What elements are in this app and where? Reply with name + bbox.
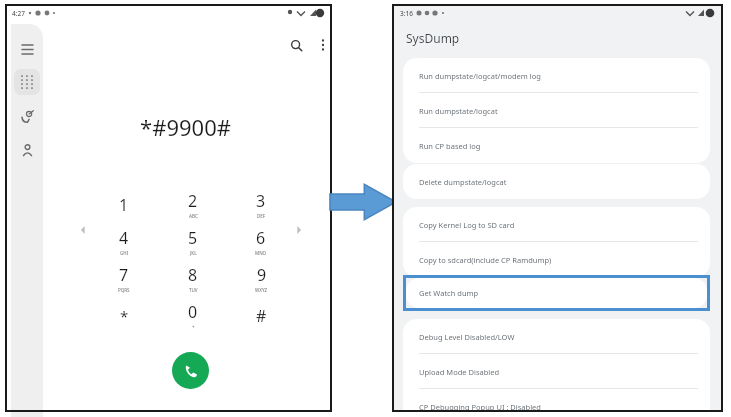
button[interactable]: Call: [172, 352, 209, 389]
staticText: Run CP based log: [419, 141, 481, 151]
staticText: 7: [119, 264, 129, 286]
button[interactable]: 9: [232, 260, 290, 297]
staticText: 1: [119, 194, 129, 216]
staticText: Copy Kernel Log to SD card: [419, 220, 515, 230]
staticText: #: [256, 305, 267, 327]
staticText: JKL: [190, 250, 197, 256]
button[interactable]: *: [95, 297, 153, 334]
staticText: Upload Mode Disabled: [419, 367, 500, 377]
button[interactable]: Copy to sdcard(include CP Ramdump): [403, 242, 710, 277]
staticText: 4:27: [12, 9, 25, 18]
staticText: +: [192, 324, 195, 330]
staticText: 8: [188, 264, 198, 286]
button[interactable]: Debug Level Disabled/LOW: [403, 319, 710, 354]
button[interactable]: 2: [164, 186, 222, 223]
button[interactable]: Run CP based log: [403, 128, 710, 163]
staticText: 3: [256, 190, 266, 212]
button[interactable]: Run dumpstate/logcat: [403, 93, 710, 128]
staticText: ABC: [189, 213, 198, 219]
button[interactable]: Search: [285, 34, 307, 56]
button[interactable]: 8: [164, 260, 222, 297]
staticText: *: [120, 306, 129, 326]
staticText: 4: [119, 227, 129, 249]
button[interactable]: Keypad: [14, 69, 40, 95]
staticText: TUV: [189, 287, 198, 293]
staticText: 3:16: [400, 9, 413, 18]
button[interactable]: Recents: [14, 103, 40, 129]
other: Next: [295, 226, 303, 234]
button[interactable]: Run dumpstate/logcat/modem log: [403, 58, 710, 93]
staticText: CP Debugging Popup UI : Disabled: [419, 402, 541, 412]
button[interactable]: 6: [232, 223, 290, 260]
staticText: Copy to sdcard(include CP Ramdump): [419, 255, 552, 265]
staticText: 0: [188, 301, 198, 323]
button[interactable]: 4: [95, 223, 153, 260]
button[interactable]: Contacts: [14, 137, 40, 163]
other: Previous: [79, 226, 87, 234]
staticText: Delete dumpstate/logcat: [419, 177, 507, 187]
staticText: 2: [188, 190, 198, 212]
staticText: Debug Level Disabled/LOW: [419, 332, 515, 342]
button[interactable]: Get Watch dump: [406, 278, 707, 308]
staticText: *#9900#: [140, 112, 231, 142]
staticText: Get Watch dump: [419, 288, 479, 298]
staticText: Run dumpstate/logcat/modem log: [419, 71, 541, 81]
staticText: WXYZ: [255, 287, 268, 293]
button[interactable]: 7: [95, 260, 153, 297]
staticText: Run dumpstate/logcat: [419, 106, 498, 116]
button[interactable]: #: [232, 297, 290, 334]
staticText: 9: [257, 264, 267, 286]
staticText: 6: [256, 227, 266, 249]
button[interactable]: CP Debugging Popup UI : Disabled: [403, 389, 710, 417]
button[interactable]: Copy Kernel Log to SD card: [403, 207, 710, 242]
button[interactable]: More options: [312, 34, 334, 56]
button[interactable]: 0: [164, 297, 222, 334]
staticText: MNO: [255, 250, 267, 256]
button[interactable]: Upload Mode Disabled: [403, 354, 710, 389]
staticText: PQRS: [118, 287, 130, 293]
staticText: DEF: [257, 213, 266, 219]
button[interactable]: 3: [232, 186, 290, 223]
button[interactable]: Delete dumpstate/logcat: [403, 164, 710, 199]
button[interactable]: 5: [164, 223, 222, 260]
staticText: 5: [188, 227, 198, 249]
button[interactable]: 1: [95, 186, 153, 223]
staticText: SysDump: [406, 30, 460, 46]
button[interactable]: Menu: [14, 36, 40, 62]
staticText: GHI: [120, 250, 129, 256]
